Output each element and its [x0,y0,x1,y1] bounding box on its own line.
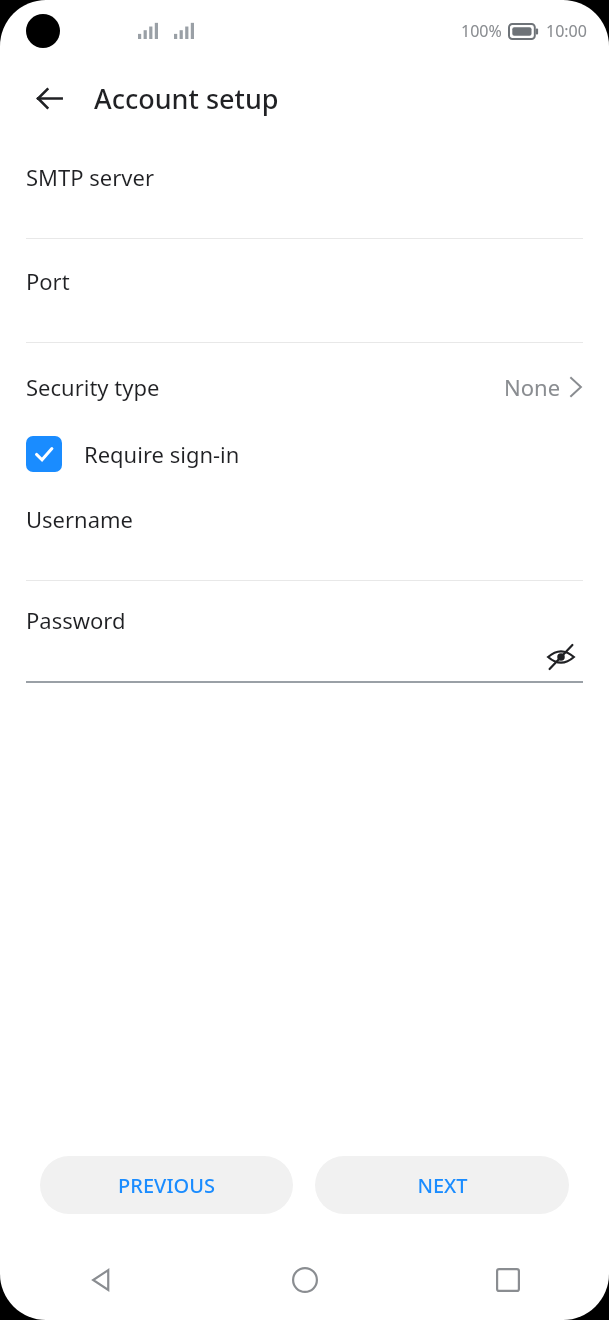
button[interactable]: Show password [539,635,583,679]
button[interactable]: Password [0,605,609,681]
staticText: Password [26,605,126,635]
button[interactable]: Security type [0,366,609,408]
staticText: Port [26,266,70,296]
button[interactable]: Back [0,1250,203,1310]
staticText: Username [26,504,134,534]
staticText: SMTP server [26,162,154,192]
button[interactable]: SMTP server [0,162,609,238]
staticText: Account setup [94,80,279,117]
button[interactable]: Username [0,504,609,580]
button[interactable]: Home [203,1250,406,1310]
button[interactable]: Recent apps [406,1250,609,1310]
staticText: PREVIOUS [118,1172,215,1199]
button[interactable]: PREVIOUS [40,1156,293,1214]
button[interactable]: Port [0,266,609,342]
staticText: 10:00 [546,20,587,42]
button[interactable]: Require sign-in [0,430,609,478]
staticText: Require sign-in [84,439,240,469]
staticText: 100% [461,20,502,42]
button[interactable]: NEXT [315,1156,569,1214]
staticText: NEXT [417,1172,468,1199]
staticText: Security type [26,372,160,402]
staticText: None [504,372,561,402]
button[interactable]: Back [26,75,72,121]
